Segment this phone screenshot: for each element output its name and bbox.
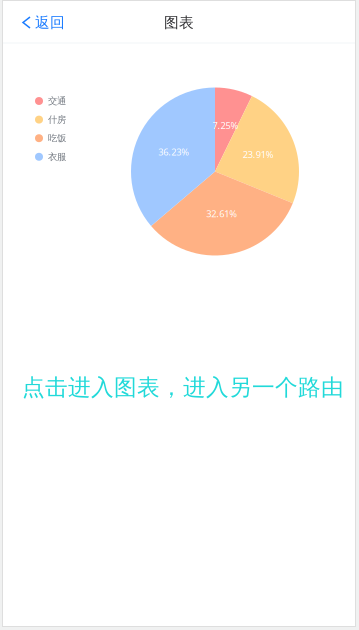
button[interactable]: 点击进入图表，进入另一个路由 <box>0 367 359 407</box>
staticText: 什房 <box>48 114 66 125</box>
staticText: 图表 <box>164 13 194 31</box>
staticText: 衣服 <box>48 151 66 163</box>
staticText: 36.23% <box>158 146 189 158</box>
staticText: 点击进入图表，进入另一个路由 <box>22 374 344 401</box>
staticText: 交通 <box>48 95 66 107</box>
staticText: 32.61% <box>206 207 237 220</box>
staticText: 返回 <box>35 13 65 31</box>
staticText: 吃饭 <box>48 132 66 144</box>
button[interactable]: 返回 <box>3 1 113 44</box>
staticText: 7.25% <box>212 119 238 132</box>
staticText: 23.91% <box>243 148 274 161</box>
